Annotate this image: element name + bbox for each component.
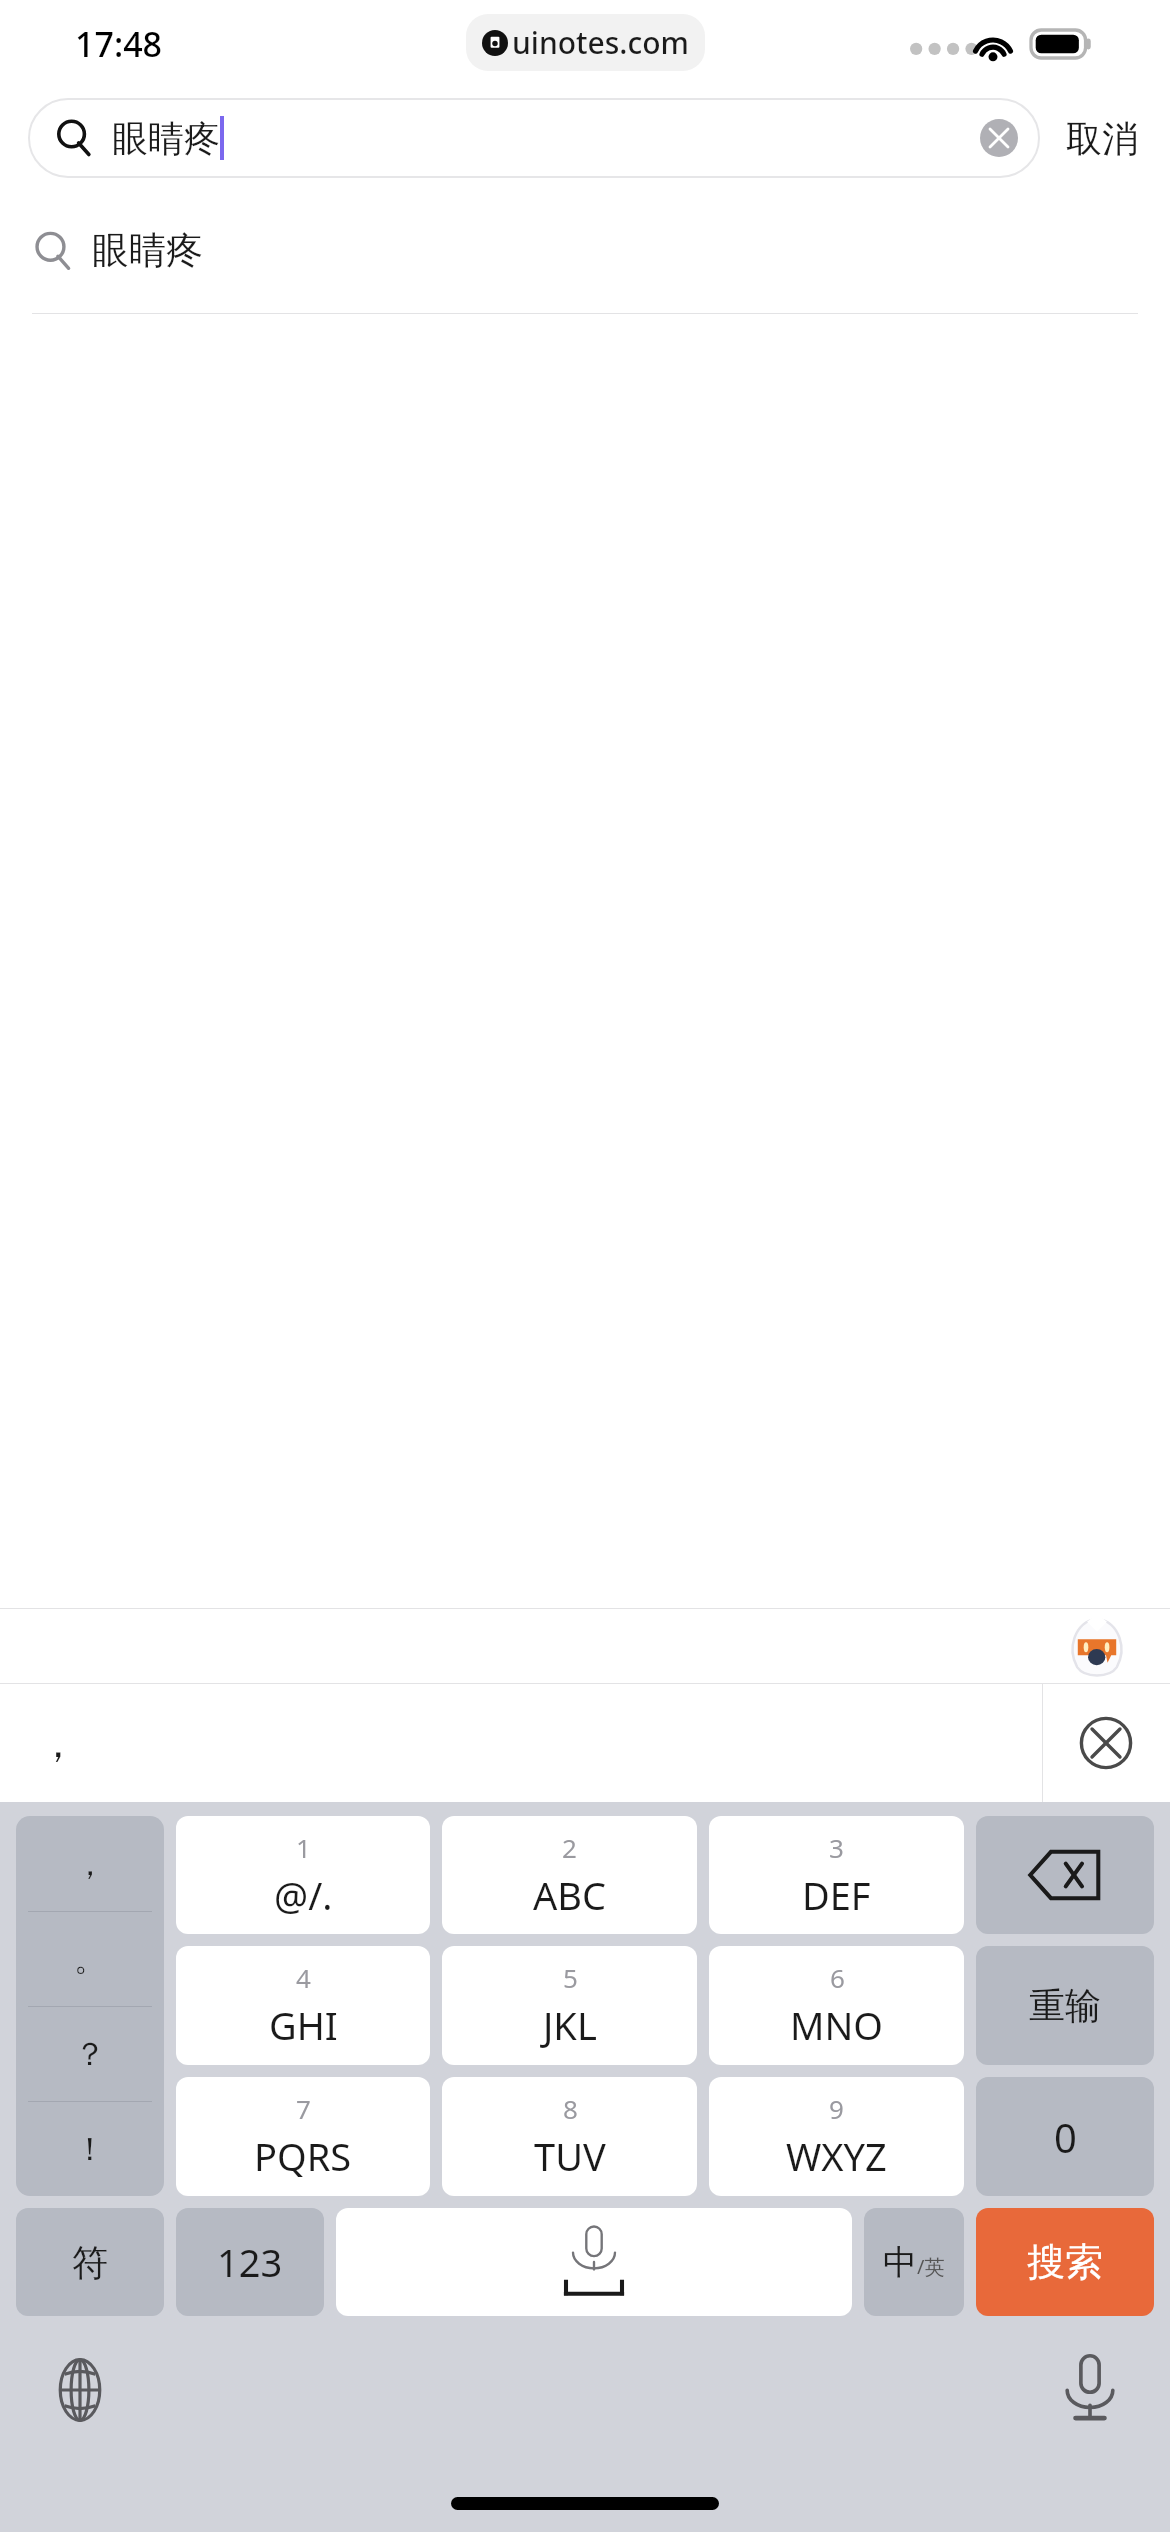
button[interactable]: 。 <box>16 1912 164 2006</box>
staticText: GHI <box>269 1999 338 2051</box>
button[interactable]: 4 <box>176 1946 430 2065</box>
staticText: 搜索 <box>1027 2238 1103 2286</box>
staticText: ？ <box>74 2034 106 2074</box>
staticText: 4 <box>296 1960 311 1995</box>
staticText: 符 <box>72 2240 108 2285</box>
button[interactable]: 眼睛疼 <box>0 188 1170 313</box>
button[interactable]: 7 <box>176 2077 430 2196</box>
button[interactable]: 搜索 <box>976 2208 1154 2316</box>
staticText: 1 <box>296 1830 311 1865</box>
staticText: ， <box>74 1844 106 1884</box>
button[interactable]: 5 <box>442 1946 697 2065</box>
staticText: @/. <box>274 1869 333 1921</box>
staticText: 9 <box>829 2091 844 2126</box>
staticText: 取消 <box>1066 116 1138 161</box>
button[interactable]: Backspace <box>976 1816 1154 1934</box>
staticText: 重输 <box>1029 1983 1101 2028</box>
button[interactable]: 重输 <box>976 1946 1154 2065</box>
staticText: /英 <box>917 2253 945 2280</box>
staticText: WXYZ <box>786 2130 887 2182</box>
button[interactable]: 中 <box>864 2208 964 2316</box>
staticText: ， <box>38 1718 78 1768</box>
button[interactable]: Clear text <box>980 119 1018 157</box>
staticText: 5 <box>563 1960 578 1995</box>
button[interactable]: 1 <box>176 1816 430 1934</box>
staticText: MNO <box>790 1999 884 2051</box>
staticText: 0 <box>1054 2110 1077 2164</box>
staticText: TUV <box>534 2130 606 2182</box>
staticText: 6 <box>830 1960 845 1995</box>
button[interactable]: Close keyboard panel <box>1078 1715 1134 1771</box>
button[interactable]: Space, voice input <box>336 2208 852 2316</box>
button[interactable]: 取消 <box>1040 102 1142 175</box>
button[interactable]: ， <box>22 1706 94 1780</box>
staticText: 。 <box>74 1939 106 1979</box>
staticText: ABC <box>533 1869 606 1921</box>
button[interactable]: 8 <box>442 2077 697 2196</box>
staticText: 8 <box>563 2091 578 2126</box>
staticText: 眼睛疼 <box>112 116 220 161</box>
button[interactable]: 6 <box>709 1946 964 2065</box>
button[interactable]: 3 <box>709 1816 964 1934</box>
button[interactable]: ， <box>16 1816 164 1911</box>
button[interactable]: 眼睛疼 <box>28 98 1040 178</box>
button[interactable]: Switch keyboard language <box>42 2352 118 2428</box>
staticText: 3 <box>829 1830 844 1865</box>
button[interactable]: ？ <box>16 2007 164 2101</box>
staticText: JKL <box>543 1999 597 2051</box>
staticText: DEF <box>802 1869 871 1921</box>
staticText: uinotes.com <box>512 22 689 63</box>
staticText: 17:48 <box>75 21 163 67</box>
staticText: 中 <box>883 2241 917 2284</box>
button[interactable]: ！ <box>16 2102 164 2196</box>
button[interactable]: 123 <box>176 2208 324 2316</box>
staticText: 眼睛疼 <box>92 227 203 274</box>
button[interactable]: 0 <box>976 2077 1154 2196</box>
button[interactable]: 符 <box>16 2208 164 2316</box>
button[interactable]: Voice input <box>1052 2352 1128 2428</box>
staticText: 7 <box>296 2091 311 2126</box>
button[interactable]: 2 <box>442 1816 697 1934</box>
staticText: 123 <box>217 2236 283 2288</box>
staticText: ！ <box>74 2129 106 2169</box>
staticText: 2 <box>562 1830 577 1865</box>
button[interactable]: Assistant mascot <box>1066 1615 1128 1677</box>
button[interactable]: 9 <box>709 2077 964 2196</box>
staticText: PQRS <box>254 2130 352 2182</box>
